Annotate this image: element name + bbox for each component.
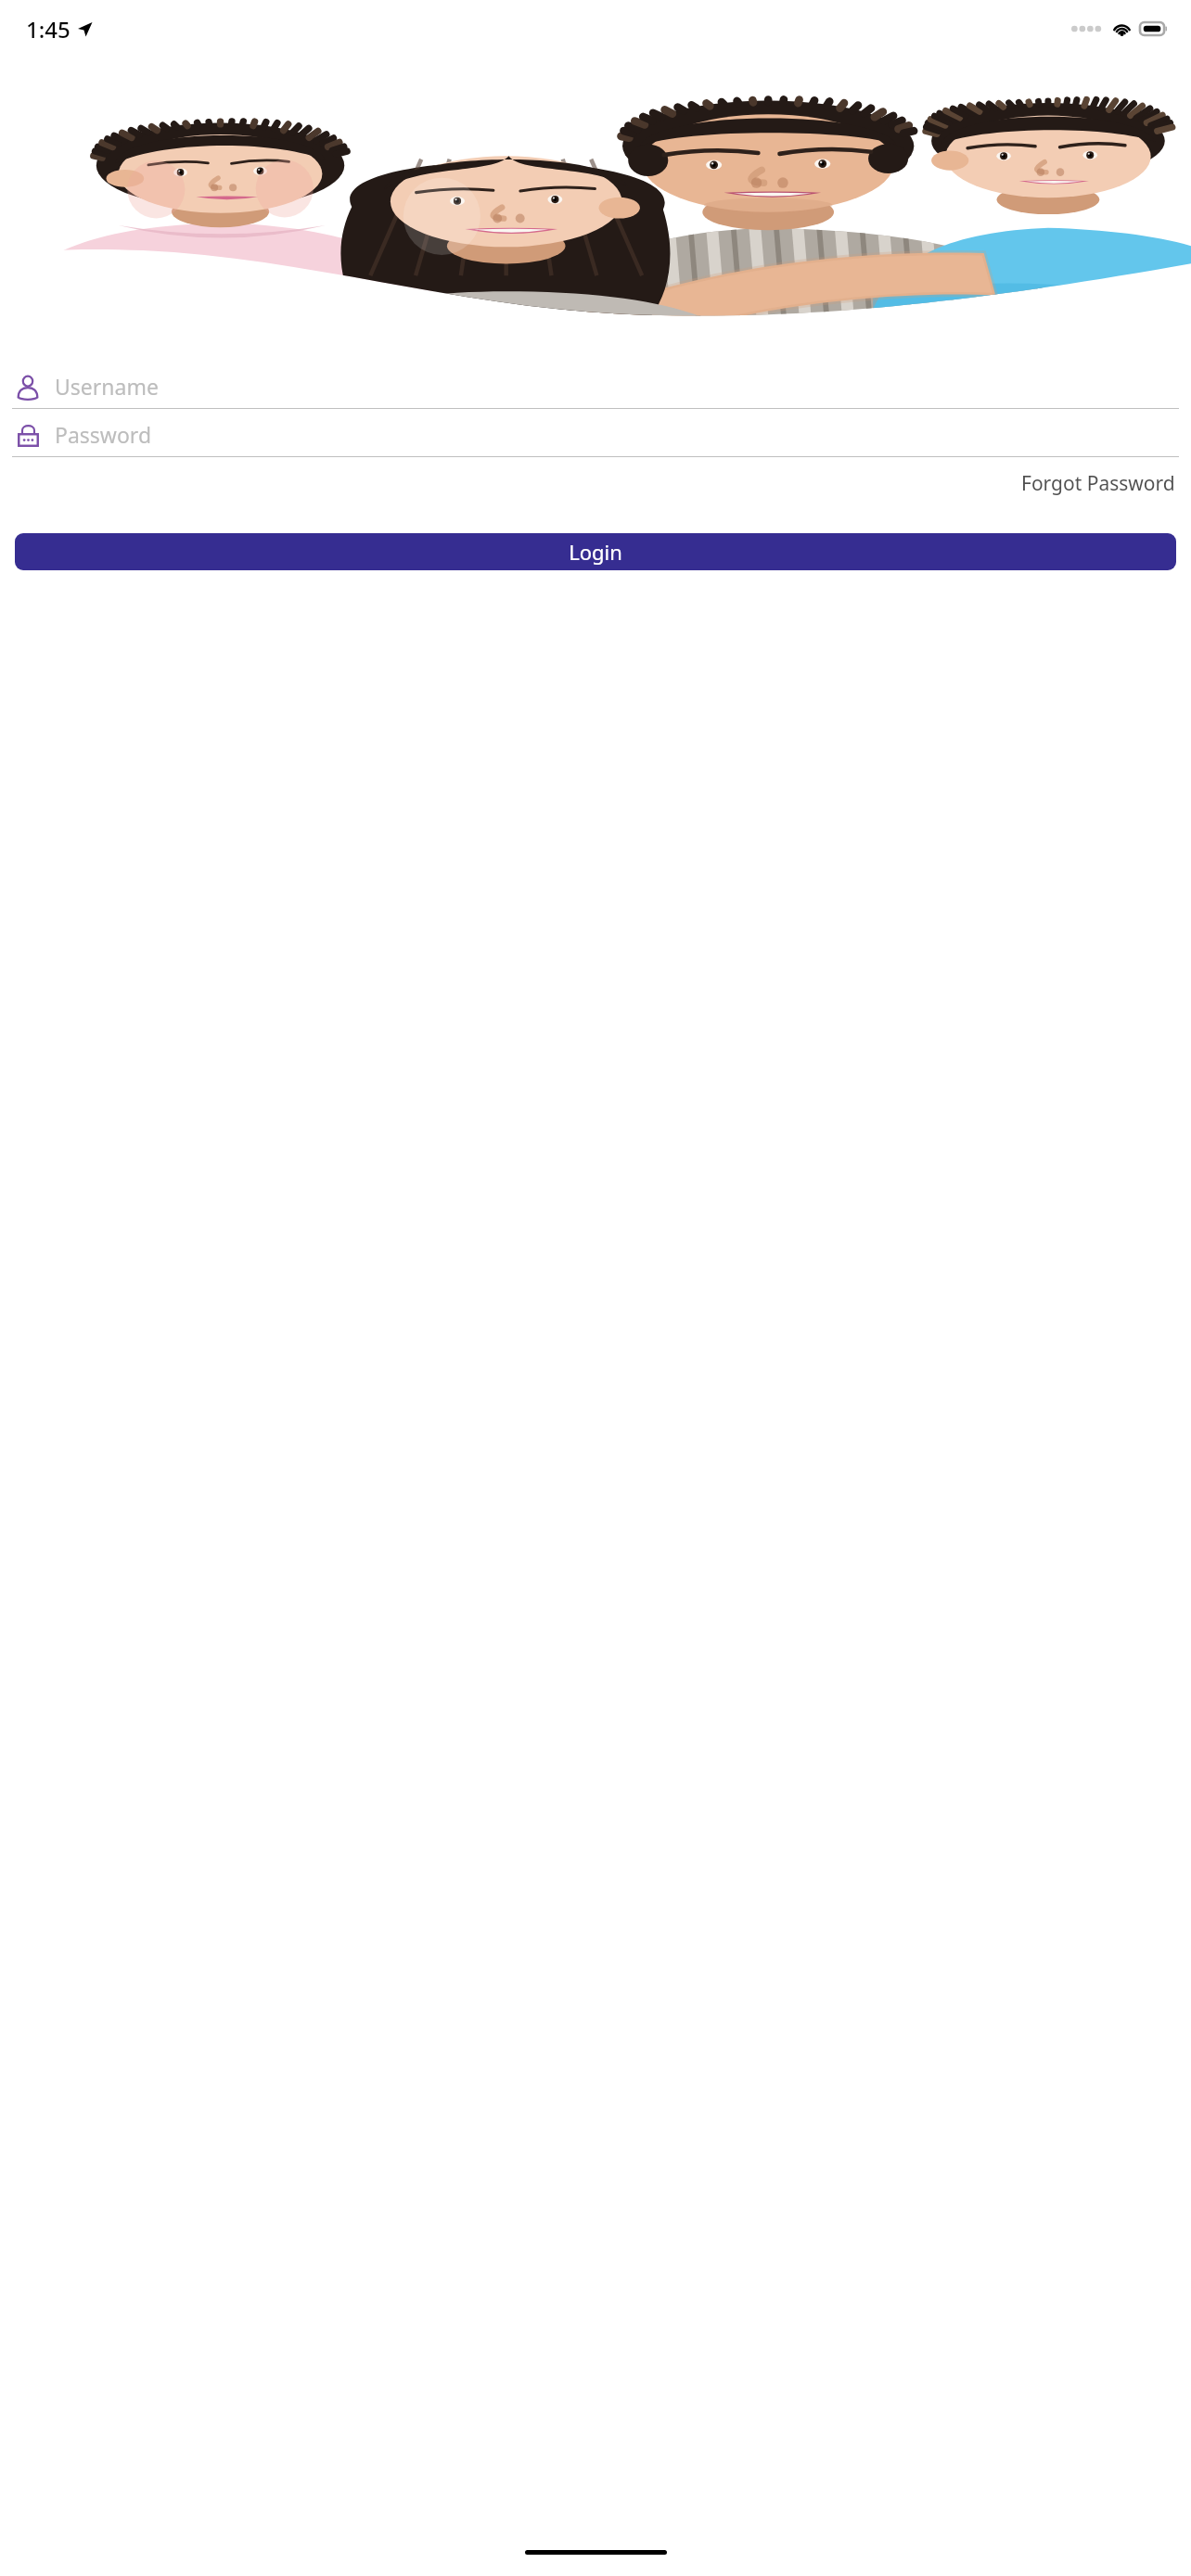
staticText: 1:45 <box>26 14 70 45</box>
other: Username <box>16 375 40 399</box>
staticText: Login <box>569 538 622 566</box>
button[interactable]: Username <box>0 364 1191 408</box>
button[interactable]: Forgot Password <box>1016 457 1181 510</box>
button[interactable]: Password <box>0 413 1191 456</box>
staticText: Forgot Password <box>1021 470 1175 497</box>
other: Password <box>17 424 40 447</box>
staticText: Username <box>55 372 159 401</box>
button[interactable]: Login <box>15 533 1176 570</box>
staticText: Password <box>55 420 152 449</box>
